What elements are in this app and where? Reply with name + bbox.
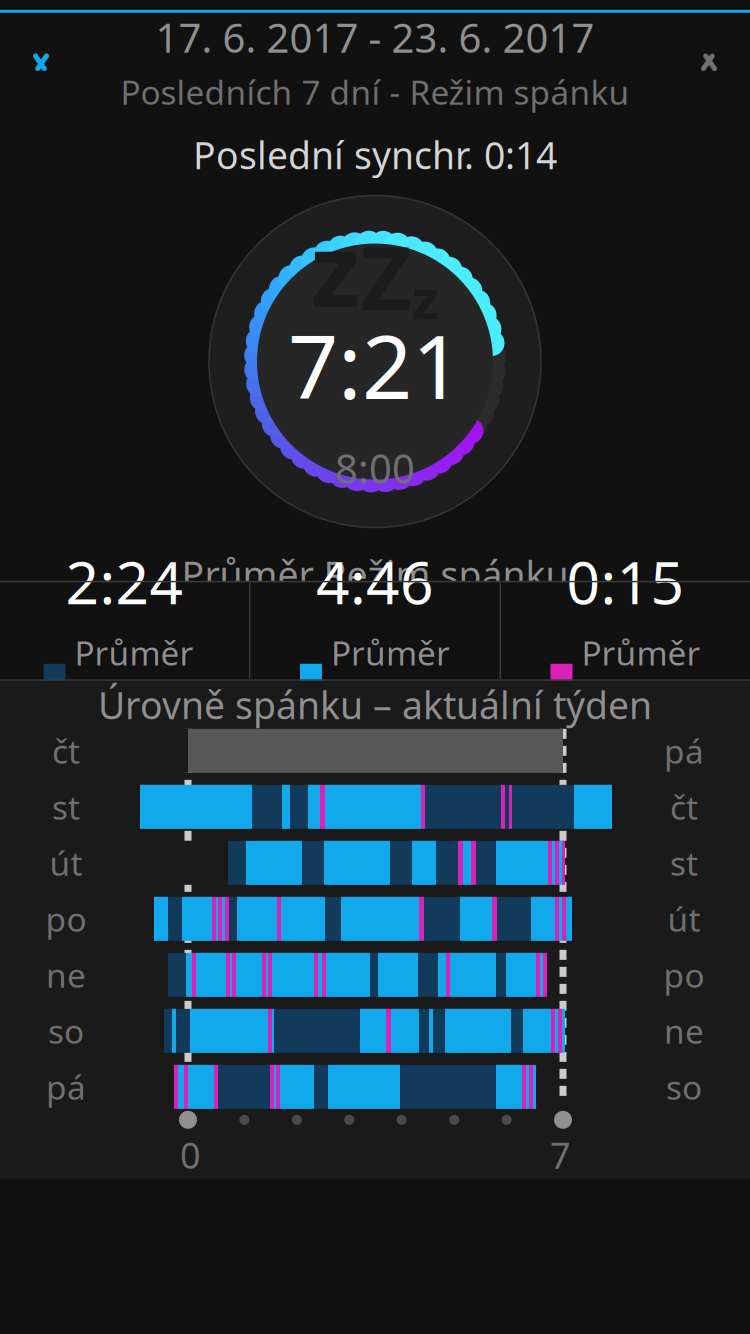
staticText: út (667, 897, 700, 941)
button[interactable]: 2:24 (0, 581, 249, 681)
staticText: 0:15 (566, 543, 684, 620)
button[interactable]: Next week (668, 26, 750, 98)
button[interactable]: Previous week (0, 26, 82, 98)
staticText: z (411, 260, 439, 335)
staticText: 4:46 (316, 543, 434, 620)
staticText: pá (664, 729, 704, 773)
staticText: 8:00 (335, 441, 415, 494)
staticText: Posledních 7 dní - Režim spánku (120, 70, 629, 114)
staticText: Průměr Aktivní (581, 630, 700, 719)
staticText: ne (664, 1009, 704, 1053)
staticText: Úrovně spánku – aktuální týden (98, 680, 652, 730)
staticText: út (49, 841, 82, 885)
staticText: z (310, 200, 360, 335)
staticText: st (52, 785, 80, 829)
staticText: po (45, 897, 86, 941)
staticText: po (663, 953, 704, 997)
staticText: 7:21 (288, 306, 462, 423)
staticText: pá (46, 1065, 86, 1109)
staticText: ne (46, 953, 86, 997)
staticText: Poslední synchr. 0:14 (193, 130, 557, 180)
staticText: 2:24 (65, 543, 183, 620)
staticText: čt (52, 729, 80, 773)
staticText: so (48, 1009, 84, 1053)
staticText: st (670, 841, 698, 885)
staticText: čt (670, 785, 698, 829)
staticText: 7 (550, 1131, 571, 1179)
staticText: 0 (180, 1131, 201, 1179)
staticText: Průměr Režim spánku (181, 549, 568, 599)
staticText: so (666, 1065, 702, 1109)
staticText: Z (360, 218, 411, 335)
staticText: 17. 6. 2017 - 23. 6. 2017 (155, 11, 594, 64)
staticText: Průměr Hluboký (74, 630, 205, 719)
button[interactable]: 4:46 (250, 581, 499, 681)
button[interactable]: 0:15 (501, 581, 750, 681)
button[interactable]: Back (0, 0, 76, 10)
staticText: Průměr Lehký (331, 630, 450, 719)
